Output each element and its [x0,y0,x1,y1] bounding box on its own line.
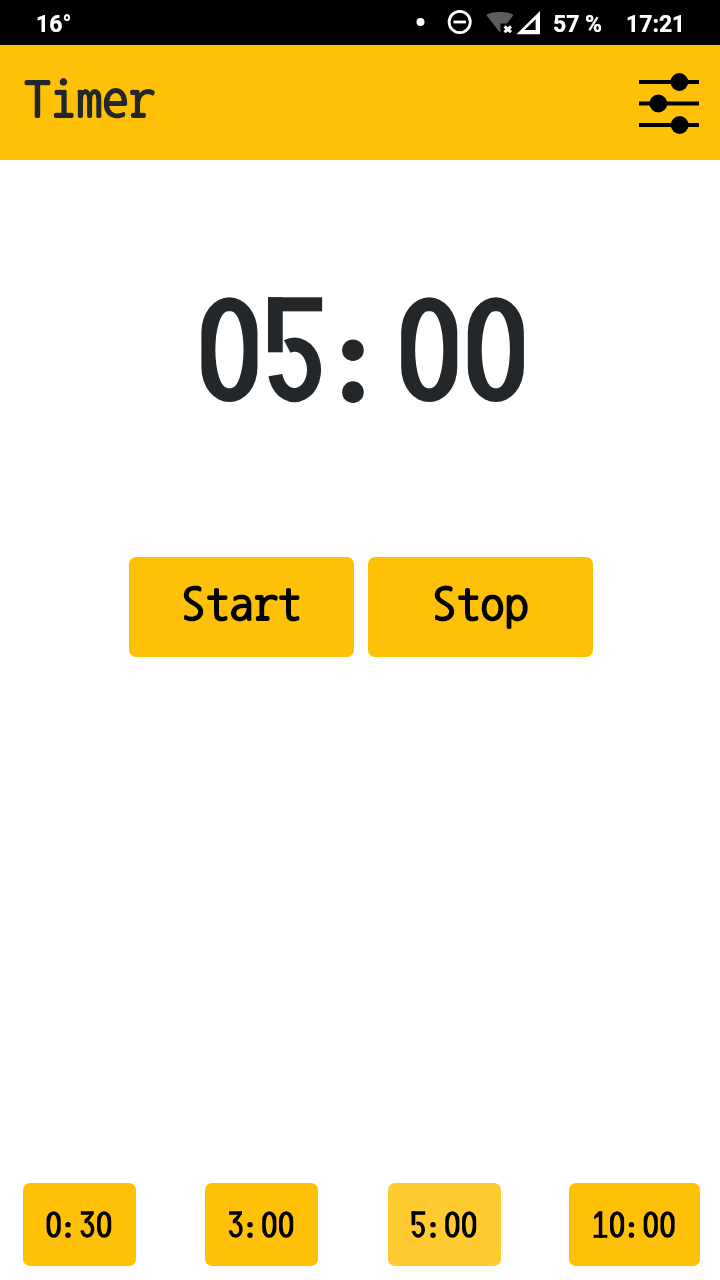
staticText: 57 % [553,11,603,38]
button[interactable] [23,1183,136,1266]
button[interactable]: Stop [368,557,593,657]
staticText: Start [181,580,302,628]
staticText: Stop [432,580,529,628]
staticText: Timer [24,73,155,125]
button[interactable]: Settings [626,55,712,151]
staticText: 16° [36,11,72,38]
staticText: 17:21 [626,11,686,38]
button[interactable] [205,1183,318,1266]
button[interactable]: Start [129,557,354,657]
button[interactable] [569,1183,700,1266]
staticText: Start [181,580,302,628]
staticText: Timer [24,73,155,125]
staticText: Stop [432,580,529,628]
button[interactable] [388,1183,501,1266]
